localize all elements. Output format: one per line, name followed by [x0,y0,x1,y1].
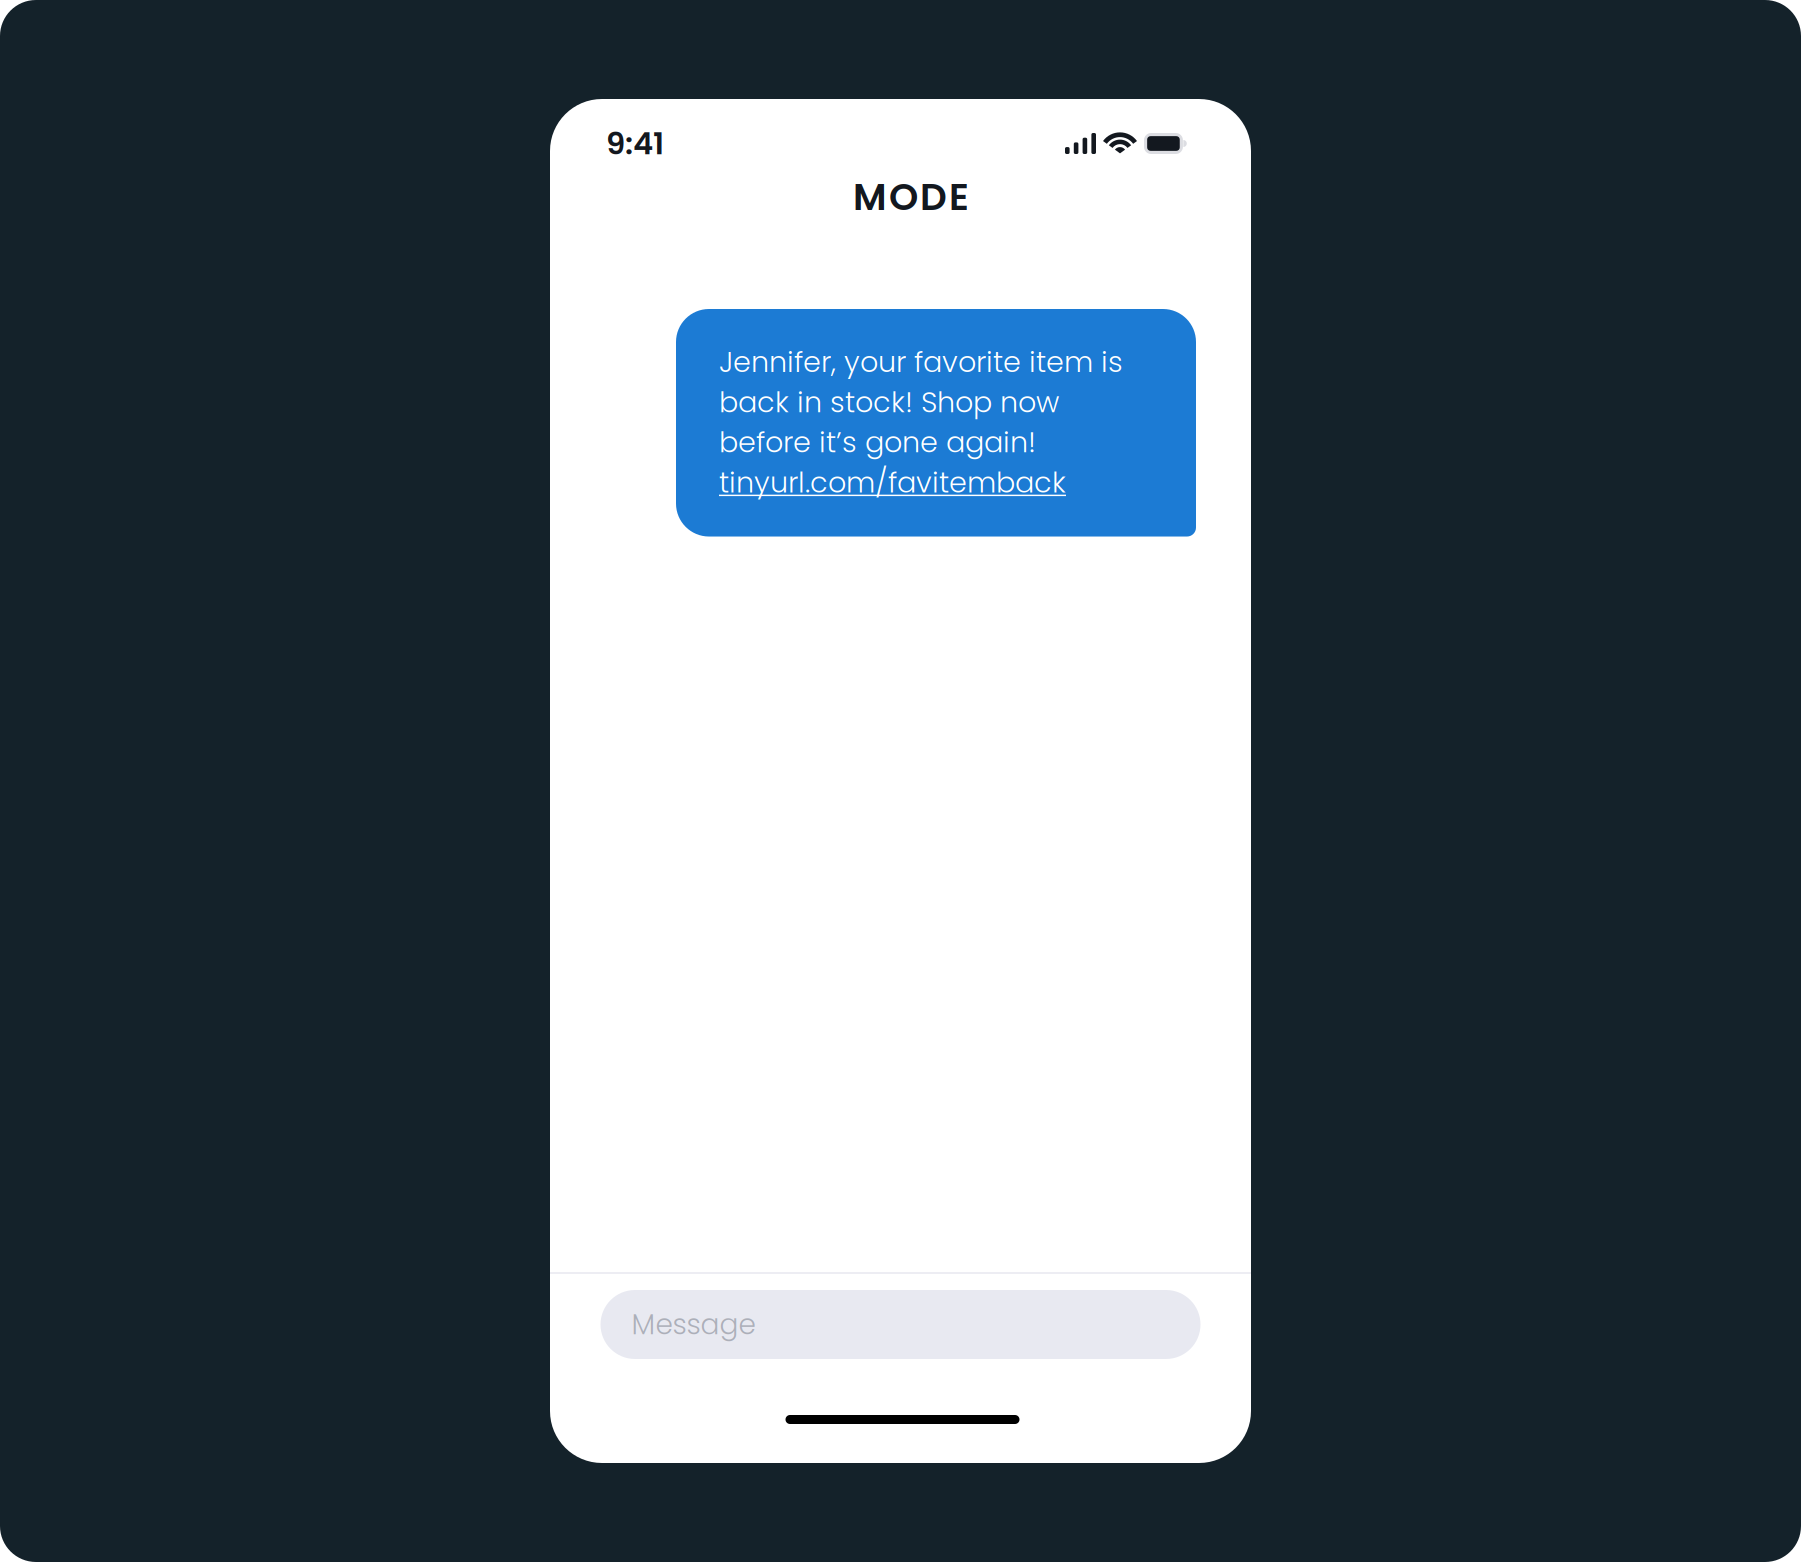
staticText: 9:41 [606,122,664,165]
staticText: tinyurl.com/favitemback [719,462,1066,502]
staticText: MODE [853,171,980,223]
staticText: Message [631,1305,755,1344]
staticText: Jennifer, your favorite item is back in … [719,342,1123,462]
button[interactable]: Jennifer, your favorite item is back in … [676,309,1196,536]
button[interactable]: Message [600,1290,1200,1359]
